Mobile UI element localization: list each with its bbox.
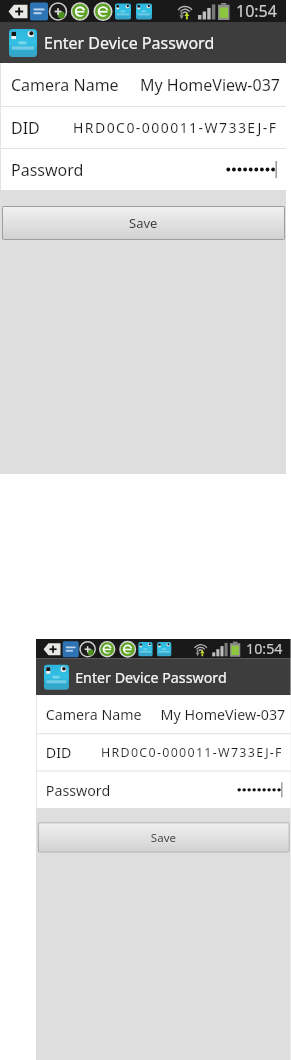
staticText: Enter Device Password — [44, 32, 215, 54]
staticText: Enter Device Password — [75, 667, 227, 687]
staticText: 10:54 — [236, 0, 277, 22]
staticText: Password — [11, 159, 84, 181]
button[interactable]: DID — [0, 107, 286, 148]
staticText: My HomeView-037 — [161, 705, 285, 724]
button[interactable]: Password — [36, 772, 290, 808]
staticText: HRD0C0-000011-W733EJ-F — [101, 744, 283, 761]
button[interactable]: Camera Name — [0, 63, 286, 106]
staticText: 10:54 — [246, 639, 282, 659]
staticText: My HomeView-037 — [140, 74, 280, 96]
button[interactable]: Save — [39, 823, 289, 852]
staticText: Camera Name — [11, 74, 119, 96]
staticText: DID — [46, 743, 72, 763]
button[interactable]: Password — [0, 149, 286, 190]
staticText: DID — [11, 117, 40, 139]
button[interactable]: DID — [36, 734, 290, 771]
staticText: Save — [151, 829, 177, 845]
staticText: Camera Name — [46, 705, 142, 724]
button[interactable]: Camera Name — [36, 695, 290, 733]
button[interactable]: Enter Device Password — [36, 659, 290, 695]
staticText: HRD0C0-000011-W733EJ-F — [73, 118, 278, 137]
button[interactable]: Enter Device Password — [0, 22, 286, 63]
button[interactable]: Save — [3, 207, 284, 239]
staticText: Save — [129, 214, 158, 232]
staticText: Password — [46, 780, 111, 800]
